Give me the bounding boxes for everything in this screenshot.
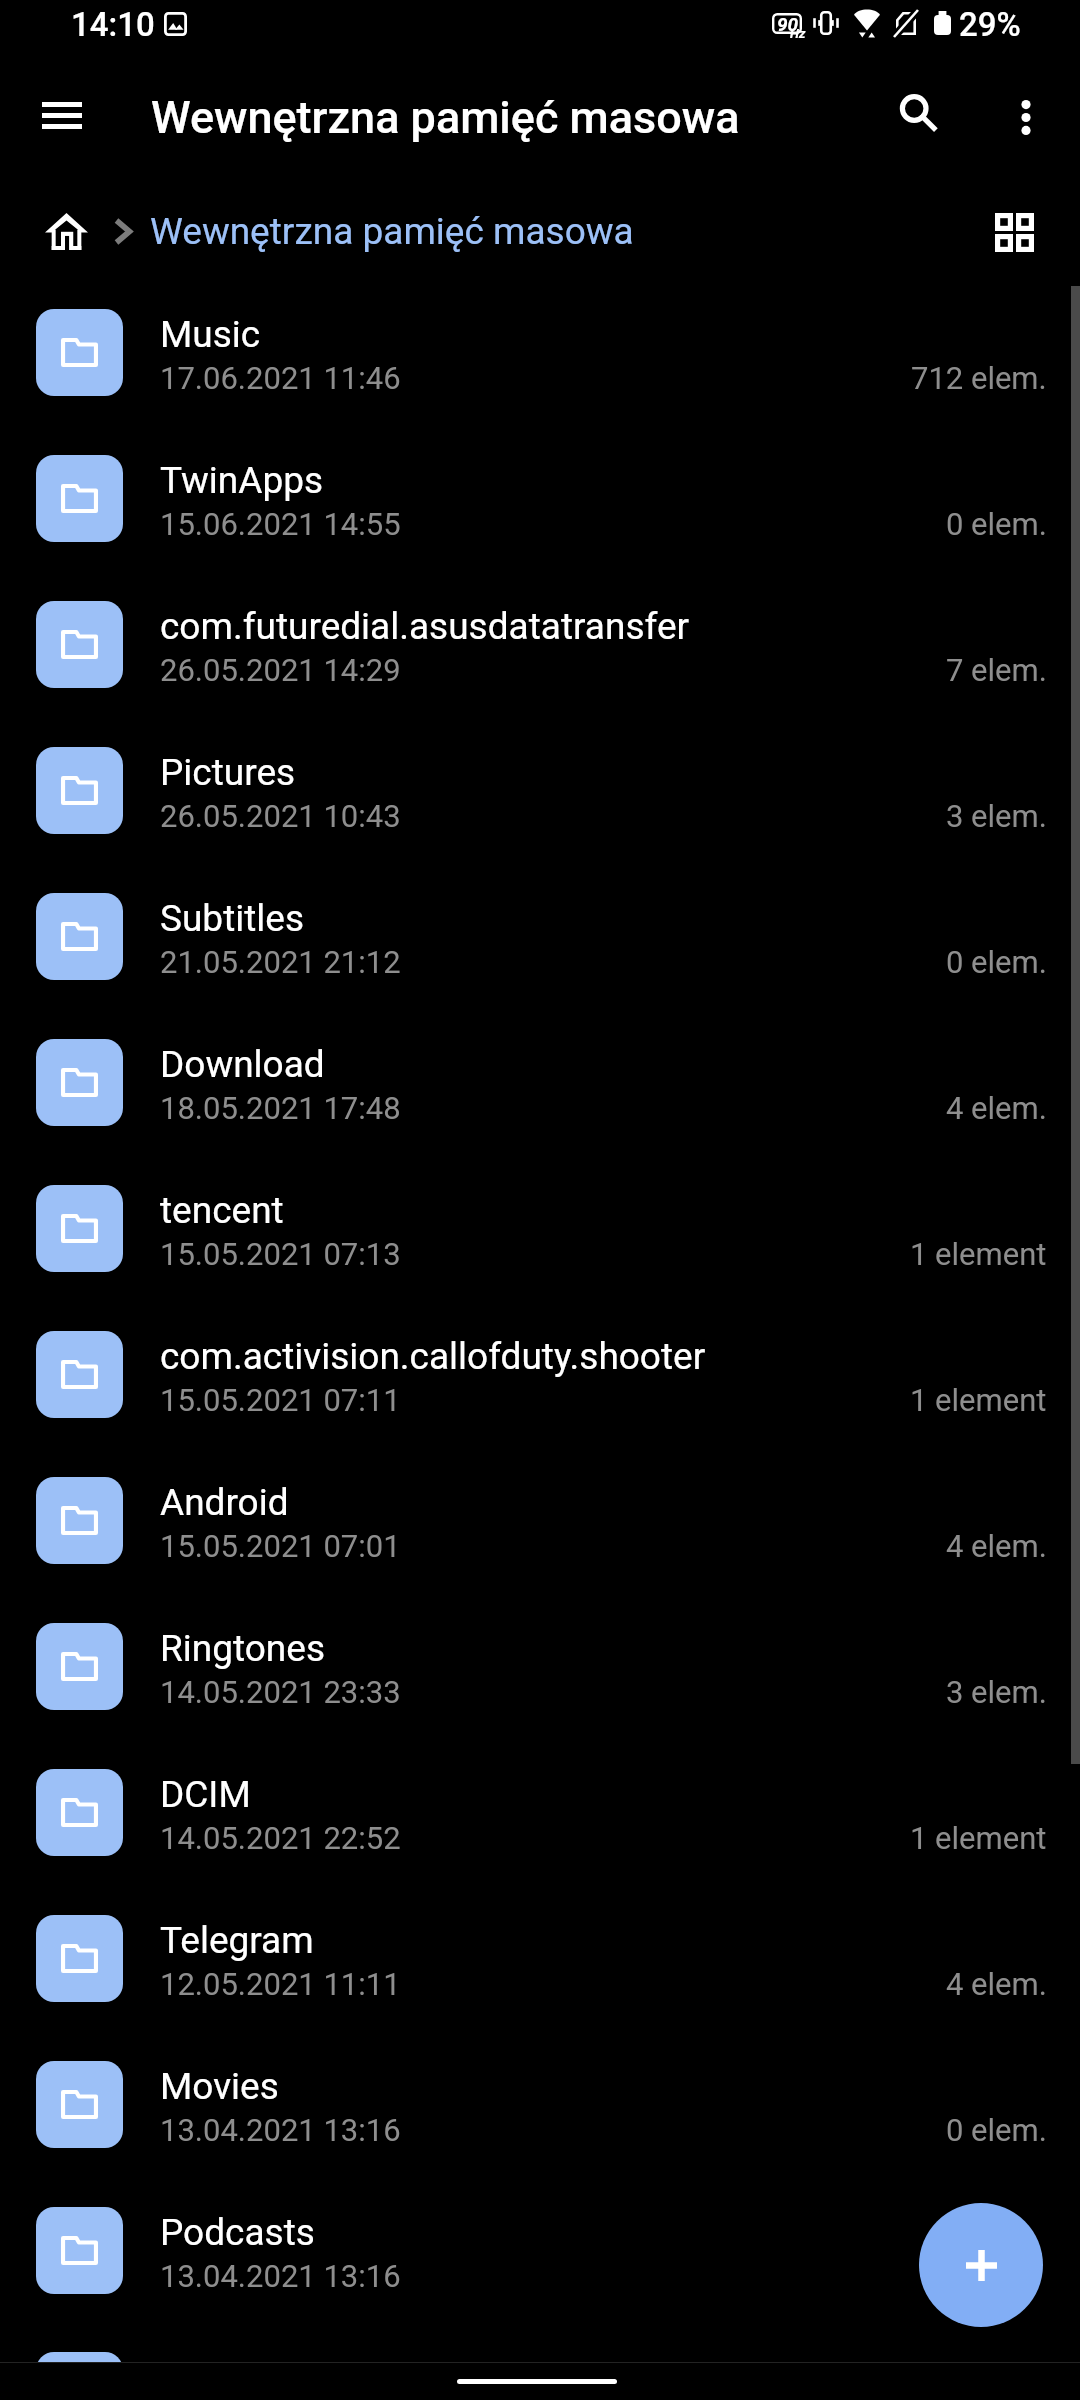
staticText: 7 elem.	[946, 652, 1047, 688]
staticText: 14.05.2021 22:52	[160, 1820, 401, 1856]
staticText: 13.04.2021 13:16	[160, 2112, 401, 2148]
staticText: TwinApps	[160, 459, 1020, 502]
staticText: 15.06.2021 14:55	[160, 506, 401, 542]
button[interactable]: More options	[982, 73, 1070, 161]
staticText: 4 elem.	[946, 1090, 1047, 1126]
staticText: 15.05.2021 07:01	[160, 1528, 401, 1564]
button[interactable]: Search	[874, 69, 962, 157]
button[interactable]: com.futuredial.asusdatatransfer	[0, 571, 1080, 717]
button[interactable]: Movies	[0, 2031, 1080, 2177]
staticText: 17.06.2021 11:46	[160, 360, 401, 396]
staticText: 13.04.2021 13:16	[160, 2258, 401, 2294]
staticText: 4 elem.	[946, 1966, 1047, 2002]
button[interactable]: Home	[45, 213, 88, 250]
staticText: 29%	[959, 5, 1021, 44]
staticText: 0 elem.	[946, 506, 1047, 542]
staticText: Wewnętrzna pamięć masowa	[151, 91, 740, 144]
button[interactable]: Download	[0, 1009, 1080, 1155]
staticText: Hz	[790, 26, 806, 41]
button[interactable]: com.activision.callofduty.shooter	[0, 1301, 1080, 1447]
staticText: 1 element	[910, 1820, 1047, 1856]
button[interactable]: Wewnętrzna pamięć masowa	[150, 210, 634, 253]
staticText: 3 elem.	[946, 1674, 1047, 1710]
button[interactable]: Android	[0, 1447, 1080, 1593]
staticText: DCIM	[160, 1773, 1020, 1816]
staticText: 90	[777, 13, 799, 35]
button[interactable]: Add	[919, 2203, 1043, 2327]
button[interactable]: Grid view	[970, 188, 1058, 276]
button[interactable]: Music	[0, 279, 1080, 425]
button[interactable]: Ringtones	[0, 1593, 1080, 1739]
staticText: Android	[160, 1481, 1020, 1524]
staticText: 26.05.2021 10:43	[160, 798, 401, 834]
button[interactable]: Pictures	[0, 717, 1080, 863]
staticText: 14.05.2021 23:33	[160, 1674, 401, 1710]
staticText: 21.05.2021 21:12	[160, 944, 401, 980]
staticText: 3 elem.	[946, 798, 1047, 834]
staticText: 1 element	[910, 1382, 1047, 1418]
button[interactable]: TwinApps	[0, 425, 1080, 571]
staticText: Ringtones	[160, 1627, 1020, 1670]
staticText: 15.05.2021 07:13	[160, 1236, 401, 1272]
staticText: 14:10	[71, 5, 155, 44]
staticText: 4 elem.	[946, 1528, 1047, 1564]
staticText: Movies	[160, 2065, 1020, 2108]
staticText: Music	[160, 313, 1020, 356]
staticText: Subtitles	[160, 897, 1020, 940]
staticText: com.activision.callofduty.shooter	[160, 1335, 1020, 1378]
staticText: tencent	[160, 1189, 1020, 1232]
button[interactable]: tencent	[0, 1155, 1080, 1301]
staticText: 26.05.2021 14:29	[160, 652, 401, 688]
staticText: 1 element	[910, 1236, 1047, 1272]
staticText: 0 elem.	[946, 2112, 1047, 2148]
button[interactable]: Subtitles	[0, 863, 1080, 1009]
staticText: Podcasts	[160, 2211, 1020, 2254]
staticText: 18.05.2021 17:48	[160, 1090, 401, 1126]
staticText: Telegram	[160, 1919, 1020, 1962]
staticText: 12.05.2021 11:11	[160, 1966, 401, 2002]
staticText: Pictures	[160, 751, 1020, 794]
staticText: com.futuredial.asusdatatransfer	[160, 605, 1020, 648]
button[interactable]: Podcasts	[0, 2177, 1080, 2323]
button[interactable]: Telegram	[0, 1885, 1080, 2031]
button[interactable]: Menu	[18, 71, 106, 159]
staticText: 0 elem.	[946, 944, 1047, 980]
staticText: 712 elem.	[911, 360, 1047, 396]
button[interactable]: DCIM	[0, 1739, 1080, 1885]
staticText: Download	[160, 1043, 1020, 1086]
staticText: 15.05.2021 07:11	[160, 1382, 401, 1418]
